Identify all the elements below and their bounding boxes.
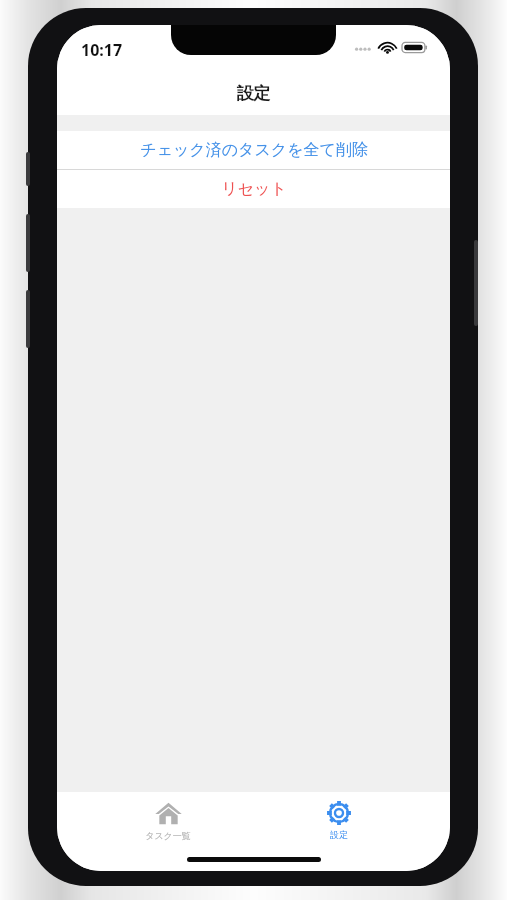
staticText: 10:17	[81, 39, 123, 61]
staticText: タスク一覧	[145, 830, 191, 841]
button[interactable]: 設定	[279, 800, 399, 840]
button[interactable]: タスク一覧	[108, 800, 228, 841]
staticText: リセット	[221, 179, 287, 199]
staticText: 設定	[57, 83, 450, 104]
button[interactable]: リセット	[57, 170, 450, 208]
staticText: 設定	[330, 829, 348, 840]
staticText: チェック済のタスクを全て削除	[140, 140, 368, 160]
button[interactable]: チェック済のタスクを全て削除	[57, 131, 450, 169]
